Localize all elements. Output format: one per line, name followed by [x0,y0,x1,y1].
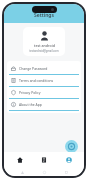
button[interactable]: Terms and conditions [7,75,81,86]
button[interactable]: Account [60,152,78,168]
staticText: About the App [19,102,42,107]
staticText: Terms and conditions [19,78,54,83]
button[interactable]: Change Password [7,63,81,74]
staticText: test android [34,43,55,48]
button[interactable]: Documents [35,152,53,168]
staticText: Settings [34,12,54,19]
button[interactable]: Add [65,140,78,153]
button[interactable]: Privacy Policy [7,87,81,98]
button[interactable]: Home [11,152,29,168]
staticText: Privacy Policy [19,90,41,95]
staticText: Change Password [19,66,48,71]
button[interactable]: test android [23,27,65,56]
staticText: testandroid@gmail.com [29,49,59,53]
button[interactable]: About the App [7,99,81,110]
